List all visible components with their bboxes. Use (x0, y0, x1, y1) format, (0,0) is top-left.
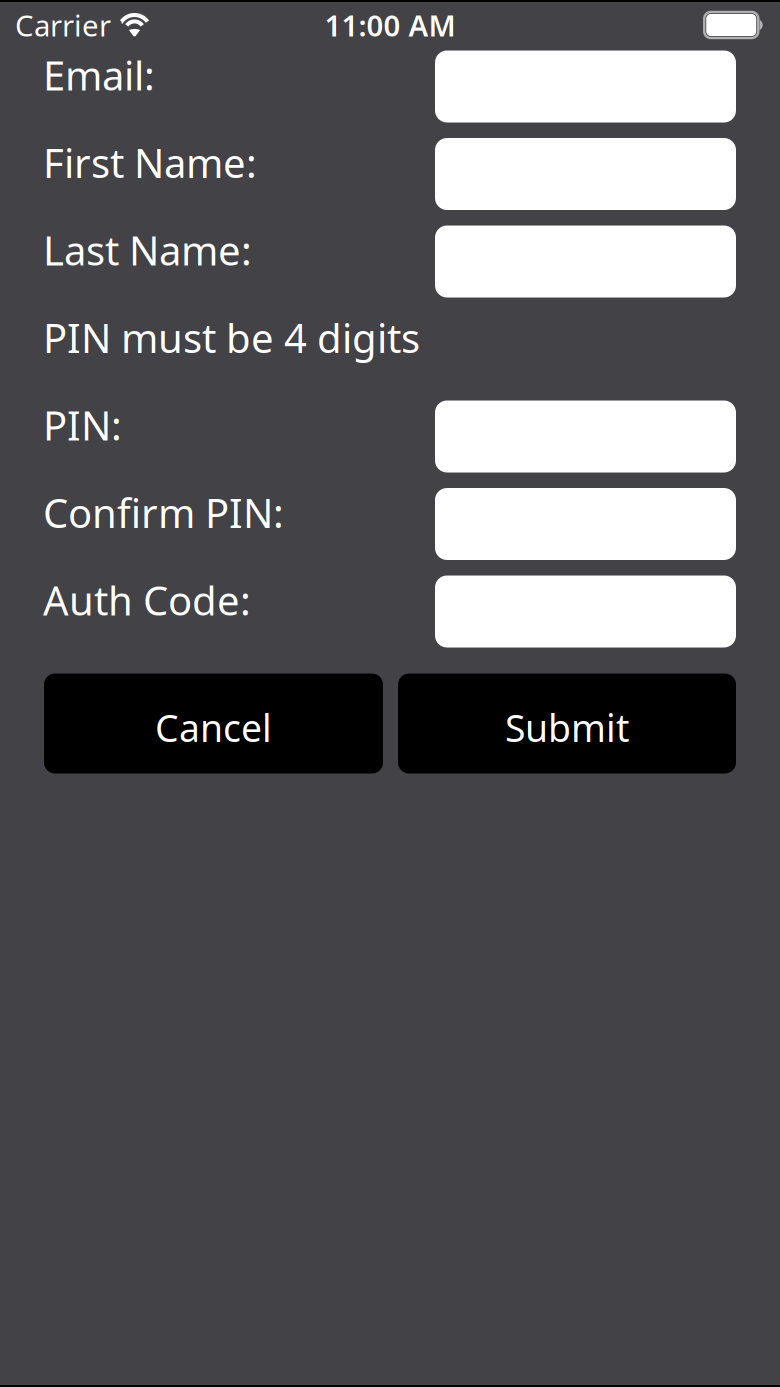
staticText: Last Name: (43, 223, 252, 276)
staticText: Carrier (15, 5, 111, 44)
staticText: Cancel (155, 703, 272, 752)
staticText: Confirm PIN: (43, 486, 284, 539)
staticText: Submit (505, 703, 629, 752)
button[interactable]: Last Name: (435, 225, 736, 297)
staticText: PIN: (43, 398, 122, 451)
button[interactable]: First Name: (435, 138, 736, 210)
button[interactable]: Cancel (44, 673, 383, 773)
button[interactable]: Confirm PIN: (435, 488, 736, 560)
button[interactable]: PIN: (435, 400, 736, 472)
staticText: First Name: (43, 136, 257, 189)
button[interactable]: Email: (435, 50, 736, 122)
staticText: Email: (43, 48, 155, 101)
staticText: 11:00 AM (324, 5, 455, 44)
staticText: PIN must be 4 digits (43, 311, 420, 364)
button[interactable]: Auth Code: (435, 575, 736, 647)
staticText: Auth Code: (43, 573, 251, 626)
button[interactable]: Submit (398, 673, 736, 773)
